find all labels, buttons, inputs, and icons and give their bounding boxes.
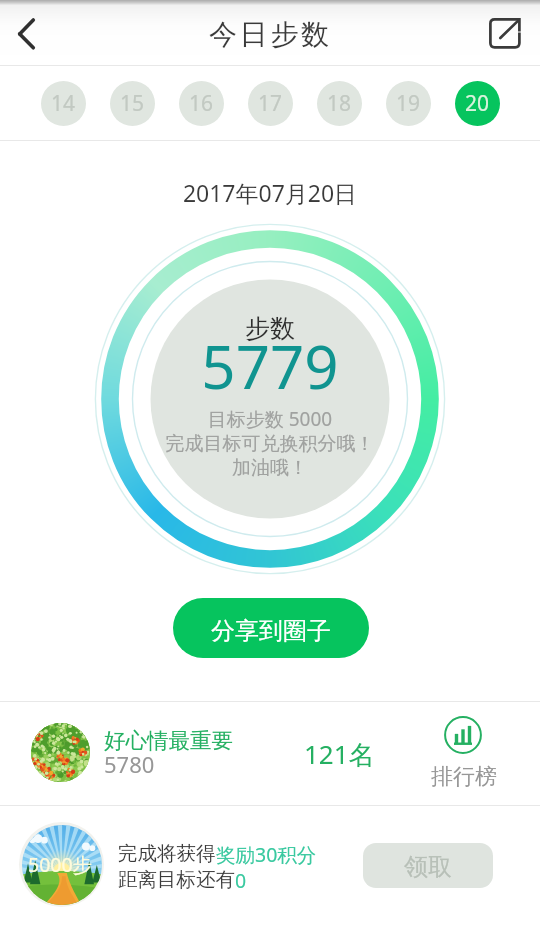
button[interactable]: 20 (455, 81, 500, 126)
staticText: 5780 (104, 749, 155, 779)
staticText: 目标步数 5000 (0, 406, 540, 432)
staticText: 5000步 (28, 851, 93, 878)
button[interactable]: Back (0, 5, 62, 65)
button[interactable]: 18 (317, 81, 362, 126)
staticText: 15 (120, 89, 145, 118)
staticText: 20 (465, 89, 490, 118)
button[interactable]: 19 (386, 81, 431, 126)
staticText: 好心情最重要 (104, 727, 233, 754)
button[interactable]: 16 (179, 81, 224, 126)
staticText: 19 (396, 89, 421, 118)
staticText: 加油哦！ (0, 456, 540, 480)
staticText: 排行榜 (431, 763, 497, 791)
other: Ranking (444, 716, 482, 754)
staticText: 距离目标还有 (118, 867, 235, 892)
button[interactable]: Share (478, 5, 540, 65)
staticText: 完成目标可兑换积分哦！ (0, 432, 540, 456)
staticText: 今日步数 (209, 17, 332, 52)
staticText: 分享到圈子 (211, 616, 331, 646)
staticText: 14 (51, 89, 76, 118)
button[interactable]: 好心情最重要 (0, 702, 540, 805)
staticText: 16 (189, 89, 214, 118)
staticText: 0 (235, 867, 247, 894)
staticText: 步数 (0, 313, 540, 344)
staticText: 奖励30积分 (216, 841, 317, 868)
staticText: 领取 (404, 852, 452, 882)
staticText: 121名 (304, 736, 375, 772)
staticText: 5779 (0, 325, 540, 407)
staticText: 18 (327, 89, 352, 118)
button[interactable]: 17 (248, 81, 293, 126)
staticText: 2017年07月20日 (0, 177, 540, 208)
button[interactable]: 14 (41, 81, 86, 126)
staticText: 完成将获得 (118, 841, 216, 866)
staticText: 17 (258, 89, 283, 118)
button[interactable]: 分享到圈子 (173, 598, 369, 658)
button[interactable]: 15 (110, 81, 155, 126)
button[interactable]: 领取 (363, 843, 493, 888)
